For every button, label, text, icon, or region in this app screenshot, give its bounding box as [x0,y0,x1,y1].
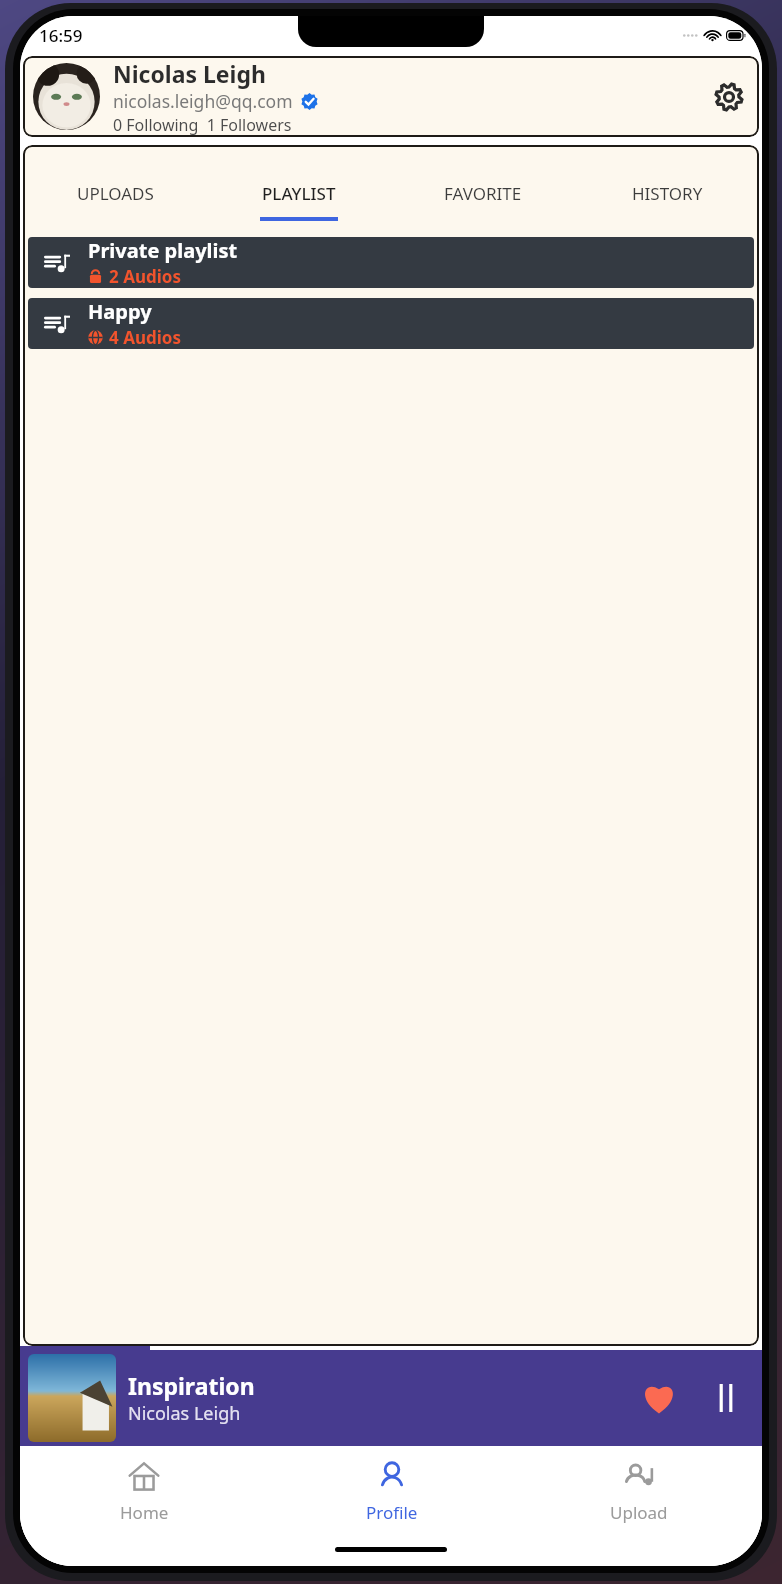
button[interactable]: HISTORY [575,165,759,221]
staticText: Upload [610,1501,668,1524]
button[interactable]: Settings [705,73,753,121]
staticText: Profile [366,1501,418,1524]
staticText: 4 Audios [109,326,181,349]
button[interactable]: Inspiration [20,1350,762,1446]
button[interactable]: Nicolas Leigh [23,56,759,137]
staticText: 16:59 [39,24,83,47]
staticText: FAVORITE [444,182,522,205]
button[interactable]: UPLOADS [23,165,207,221]
staticText: 0 Following 1 Followers [113,114,292,136]
staticText: Home [120,1501,169,1524]
staticText: HISTORY [632,182,703,205]
staticText: Happy [88,298,152,325]
button[interactable]: PLAYLIST [207,165,391,221]
button[interactable]: Favorite [630,1369,688,1427]
button[interactable]: Home [20,1446,268,1566]
staticText: Private playlist [88,237,238,264]
button[interactable]: FAVORITE [391,165,575,221]
staticText: Nicolas Leigh [128,1401,241,1426]
button[interactable]: Profile [268,1446,515,1566]
staticText: 2 Audios [109,265,181,288]
staticText: Nicolas Leigh [113,58,266,89]
staticText: UPLOADS [77,182,154,205]
button[interactable]: Upload [515,1446,762,1566]
staticText: nicolas.leigh@qq.com [113,89,293,113]
staticText: PLAYLIST [262,182,336,205]
button[interactable]: Private playlist [28,237,754,288]
staticText: Inspiration [128,1370,255,1401]
button[interactable]: Pause [700,1372,752,1424]
button[interactable]: Happy [28,298,754,349]
